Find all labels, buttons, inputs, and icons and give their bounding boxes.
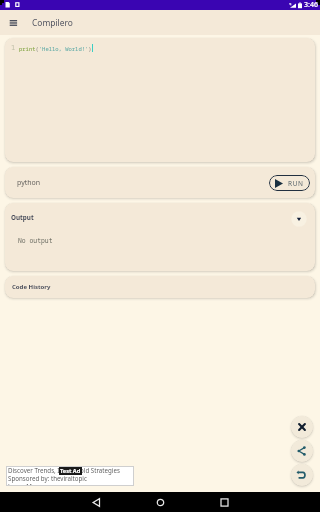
button[interactable]: RUN <box>269 175 310 191</box>
button[interactable]: Collapse output <box>287 207 311 231</box>
button[interactable]: Close <box>291 416 313 438</box>
button[interactable]: Back <box>86 492 106 512</box>
staticText: Compilero <box>32 17 73 28</box>
button[interactable]: Share <box>291 440 313 462</box>
button[interactable]: Code History <box>5 276 315 298</box>
button[interactable]: Recents <box>214 492 234 512</box>
button[interactable]: Menu <box>0 10 25 35</box>
staticText: Sponsored by: theviraltopic <box>8 474 87 482</box>
staticText: Test Ad <box>60 467 81 475</box>
button[interactable]: Home <box>150 492 170 512</box>
button[interactable]: Discover Trends, Ignite Bold Strategies <box>6 466 134 486</box>
staticText: Learn More <box>8 482 42 486</box>
staticText: RUN <box>288 179 304 188</box>
staticText: print('Hello, World!') <box>19 45 92 52</box>
staticText: Output <box>11 213 34 222</box>
staticText: 3:46 <box>304 0 318 10</box>
staticText: 1 <box>11 43 16 53</box>
staticText: Discover Trends, Ignite Bold Strategies <box>8 466 120 474</box>
staticText: No output <box>18 236 53 245</box>
staticText: python <box>17 178 41 188</box>
staticText: Code History <box>12 283 51 291</box>
button[interactable]: Undo <box>291 464 313 486</box>
